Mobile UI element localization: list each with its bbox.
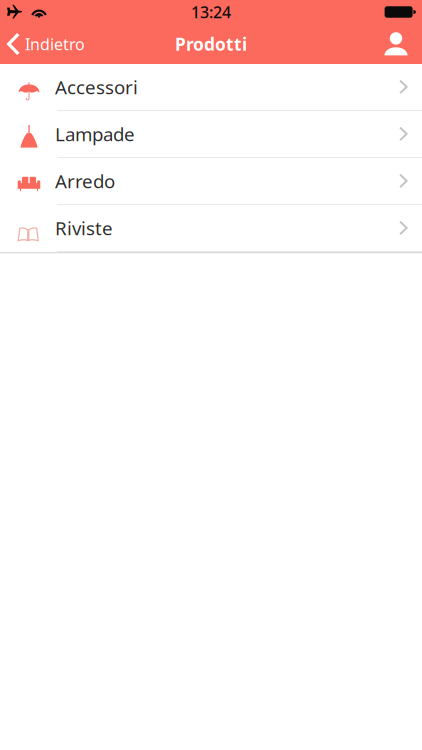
staticText: 13:24	[191, 1, 231, 23]
staticText: Lampade	[55, 122, 135, 146]
staticText: Indietro	[25, 33, 85, 55]
staticText: Arredo	[55, 169, 115, 193]
button[interactable]: Indietro	[0, 24, 93, 64]
button[interactable]: Lampade	[0, 111, 422, 158]
button[interactable]: Arredo	[0, 158, 422, 205]
button[interactable]: Account	[373, 24, 422, 64]
button[interactable]: Riviste	[0, 205, 422, 252]
button[interactable]: Accessori	[0, 64, 422, 111]
staticText: Prodotti	[175, 32, 247, 55]
staticText: Accessori	[55, 75, 138, 99]
staticText: Riviste	[55, 216, 113, 240]
